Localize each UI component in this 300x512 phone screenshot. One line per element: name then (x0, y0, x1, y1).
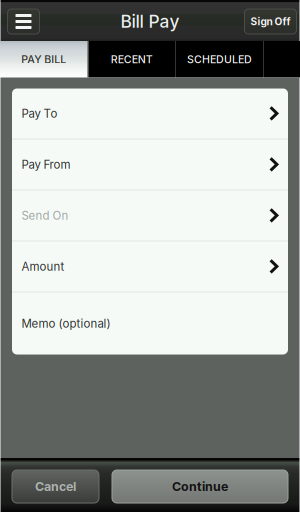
button[interactable]: Memo (optional) (12, 292, 288, 354)
button[interactable]: Cancel (12, 470, 99, 503)
staticText: Pay To (21, 107, 57, 120)
staticText: Send On (21, 209, 68, 222)
button[interactable]: SCHEDULED (176, 41, 263, 77)
staticText: SCHEDULED (187, 53, 252, 66)
button[interactable]: Pay From (12, 139, 288, 189)
button[interactable]: RECENT (88, 41, 175, 77)
staticText: Cancel (35, 479, 76, 494)
staticText: RECENT (111, 53, 153, 66)
button[interactable]: Continue (112, 470, 288, 503)
staticText: Memo (optional) (21, 317, 110, 330)
button[interactable]: PAY BILL (0, 41, 87, 77)
button[interactable]: Menu (7, 9, 39, 34)
staticText: PAY BILL (21, 53, 66, 66)
button[interactable]: Amount (12, 241, 288, 291)
button[interactable]: Pay To (12, 88, 288, 138)
staticText: Sign Off (250, 15, 290, 28)
staticText: Pay From (21, 158, 70, 171)
button[interactable]: Sign Off (244, 9, 296, 34)
staticText: Bill Pay (120, 11, 179, 32)
staticText: Amount (21, 260, 64, 273)
staticText: Continue (172, 479, 228, 494)
button[interactable]: Send On (12, 190, 288, 240)
